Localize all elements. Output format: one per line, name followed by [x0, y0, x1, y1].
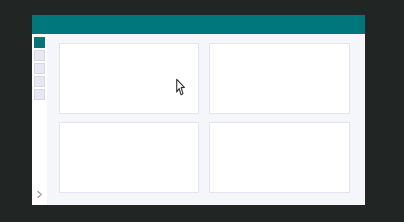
button[interactable]: Section 3 [34, 63, 45, 74]
button[interactable]: Section 2 [34, 50, 45, 61]
button[interactable]: Section 4 [34, 76, 45, 87]
button[interactable]: Card 2 [209, 43, 350, 114]
button[interactable]: Section 5 [34, 89, 45, 100]
button[interactable]: Card 4 [209, 122, 350, 193]
button[interactable]: Card 3 [59, 122, 199, 193]
button[interactable]: Card 1 [59, 43, 199, 114]
button[interactable]: Expand navigation [33, 188, 46, 201]
